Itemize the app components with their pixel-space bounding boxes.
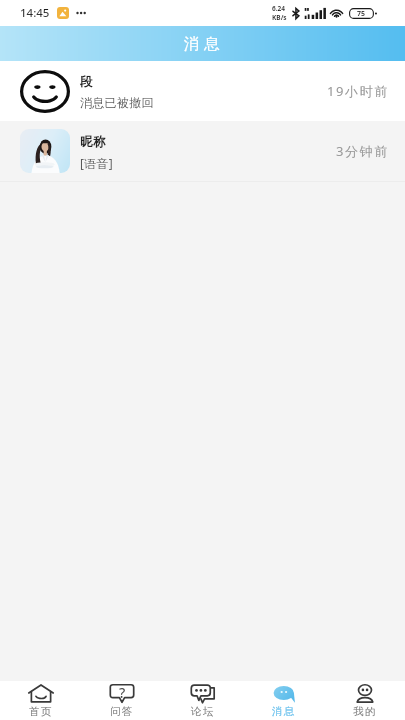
button[interactable]: 我的 (324, 681, 405, 720)
staticText: 段 (80, 74, 93, 90)
button[interactable]: 昵称 (0, 121, 405, 181)
staticText: ? (119, 683, 126, 702)
staticText: 消息 (272, 705, 296, 718)
button[interactable]: 段 (0, 61, 405, 121)
button[interactable]: 论坛 (162, 681, 243, 720)
staticText: [语音] (80, 155, 114, 171)
staticText: 首页 (29, 705, 53, 718)
staticText: 消息 (181, 34, 222, 54)
staticText: 昵称 (80, 134, 106, 150)
staticText: 6.24 (272, 4, 285, 13)
staticText: 75 (357, 9, 366, 19)
staticText: 3分钟前 (336, 142, 389, 160)
staticText: KB/s (272, 13, 287, 22)
staticText: 14:45 (20, 5, 50, 21)
staticText: 问答 (110, 705, 134, 718)
staticText: 我的 (353, 705, 377, 718)
staticText: 论坛 (191, 705, 215, 718)
staticText: 消息已被撤回 (80, 95, 154, 110)
button[interactable]: ? (81, 681, 162, 720)
button[interactable]: 首页 (0, 681, 81, 720)
button[interactable]: 消息 (243, 681, 324, 720)
staticText: 19小时前 (327, 82, 389, 100)
